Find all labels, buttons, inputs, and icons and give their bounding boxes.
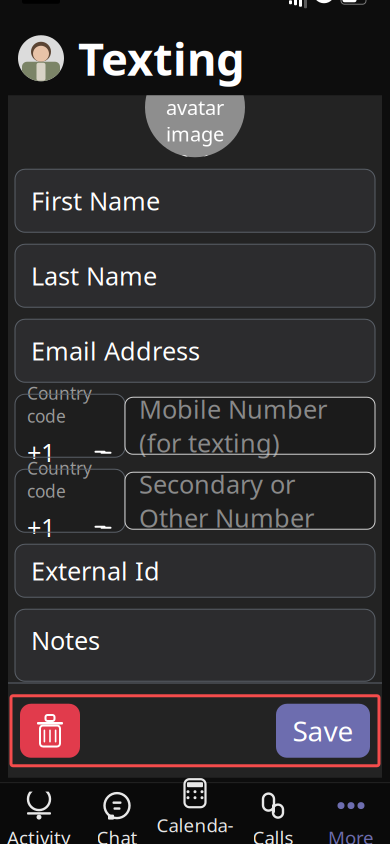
staticText: +1 [27,510,55,544]
staticText: Notes [31,623,100,657]
staticText: Chat [96,825,137,844]
button[interactable]: Profile [18,35,64,81]
button[interactable]: Calls [234,791,312,844]
button[interactable]: Country code [15,469,125,532]
button[interactable]: Email Address [15,319,375,394]
button[interactable]: Change avatar image [145,95,245,157]
staticText: Mobile Number (for texting) [139,392,327,459]
staticText: Last Name [31,259,157,292]
staticText: First Name [31,184,160,217]
button[interactable]: Activity [0,791,78,844]
button[interactable]: Chat [78,791,156,844]
staticText: Calls [252,825,293,844]
staticText: +1 [27,435,55,469]
staticText: Email Address [31,334,200,367]
button[interactable]: First Name [15,169,375,244]
staticText: Calendar [156,813,233,844]
button[interactable]: Country code [15,394,125,457]
staticText: Country code [27,381,92,427]
button[interactable]: Last Name [15,244,375,319]
staticText: External Id [31,554,160,587]
staticText: avatar image [166,94,224,147]
button[interactable]: Delete [20,704,80,758]
button[interactable]: Save [276,704,370,758]
button[interactable]: Calendar [156,791,234,844]
staticText: (100x100) [150,148,239,175]
staticText: Click to change [161,40,229,93]
button[interactable]: More [312,791,390,844]
staticText: Secondary or Other Number [139,467,314,534]
staticText: Country code [27,456,92,502]
button[interactable]: Mobile Number (for texting) [125,397,375,454]
staticText: Activity [7,825,71,844]
staticText: Texting [78,28,245,88]
staticText: Save [292,712,353,749]
button[interactable]: Secondary or Other Number [125,472,375,529]
button[interactable]: External Id [15,544,375,609]
staticText: More [328,825,374,844]
button[interactable]: Notes [15,609,375,693]
